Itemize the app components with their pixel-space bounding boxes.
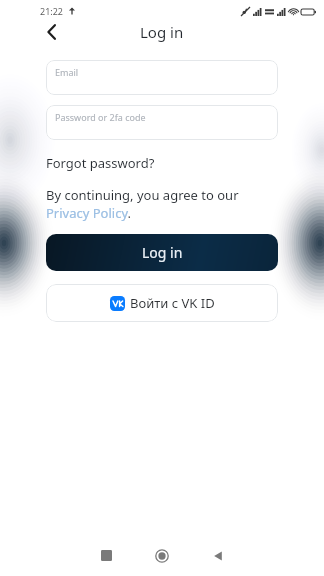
- button[interactable]: Back: [196, 535, 240, 576]
- button[interactable]: Forgot password?: [46, 154, 155, 172]
- staticText: Forgot password?: [46, 154, 155, 172]
- staticText: 21:22: [40, 5, 64, 17]
- button[interactable]: Home: [140, 535, 184, 576]
- button[interactable]: Back: [38, 18, 66, 46]
- staticText: By continuing, you agree to our Privacy …: [46, 186, 239, 222]
- button[interactable]: Войти с VK ID: [46, 284, 278, 322]
- button[interactable]: Log in: [46, 234, 278, 271]
- staticText: Password or 2fa code: [55, 111, 146, 123]
- button[interactable]: Email: [46, 60, 278, 95]
- staticText: Log in: [140, 22, 184, 42]
- button[interactable]: Recents: [84, 535, 128, 576]
- staticText: Войти с VK ID: [130, 294, 215, 312]
- staticText: Log in: [142, 243, 183, 262]
- staticText: Email: [55, 66, 79, 78]
- button[interactable]: Password or 2fa code: [46, 105, 278, 140]
